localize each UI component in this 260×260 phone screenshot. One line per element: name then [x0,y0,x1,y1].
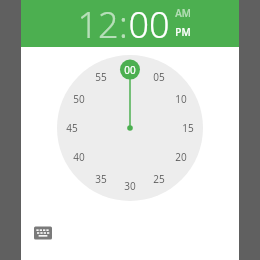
staticText: 35 [95,172,107,186]
staticText: 15 [182,121,194,135]
staticText: AM [175,6,191,20]
staticText: PM [175,25,191,39]
staticText: 55 [95,70,107,84]
staticText: 00 [128,0,170,47]
staticText: 12 [77,0,119,47]
button[interactable]: 00 [57,55,203,201]
button[interactable]: Switch to keyboard input [26,216,60,250]
staticText: 30 [124,179,136,193]
button[interactable]: 00 [128,0,170,47]
button[interactable]: 12 [77,0,119,47]
staticText: 10 [175,92,187,106]
staticText: 05 [153,70,165,84]
button[interactable]: AM [175,6,191,20]
staticText: 20 [175,150,187,164]
staticText: 00 [124,63,136,77]
staticText: 45 [66,121,78,135]
staticText: : [119,0,128,47]
staticText: 50 [73,92,85,106]
staticText: 25 [153,172,165,186]
button[interactable]: PM [175,25,191,39]
staticText: 40 [73,150,85,164]
